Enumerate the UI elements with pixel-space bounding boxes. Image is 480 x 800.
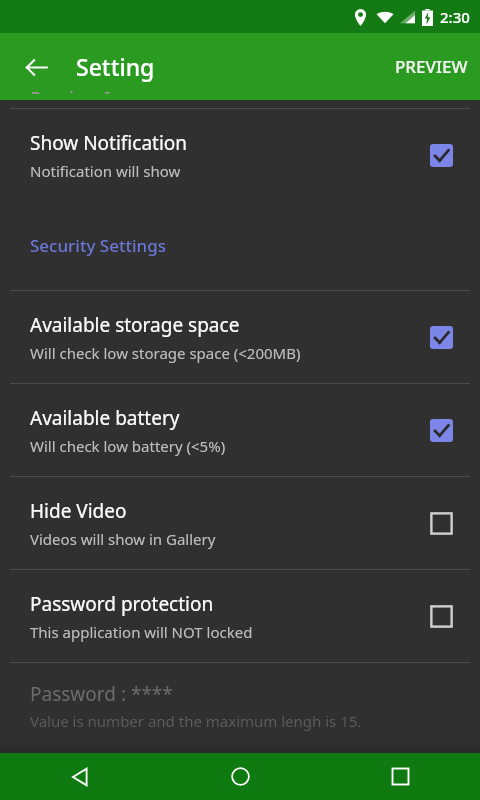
staticText: Will check low storage space (<200MB) bbox=[30, 343, 301, 363]
staticText: Password protection bbox=[30, 591, 214, 617]
staticText: Hide Video bbox=[30, 498, 127, 524]
button[interactable]: PREVIEW bbox=[383, 45, 480, 88]
staticText: 2:30 bbox=[440, 7, 470, 27]
staticText: Value is number and the maximum lengh is… bbox=[30, 711, 362, 731]
staticText: Available battery bbox=[30, 405, 180, 431]
staticText: Videos will show in Gallery bbox=[30, 529, 216, 549]
button[interactable]: Password : **** bbox=[0, 663, 480, 745]
staticText: Preview Icon bbox=[30, 86, 143, 94]
staticText: Security Settings bbox=[30, 234, 166, 257]
staticText: PREVIEW bbox=[395, 55, 468, 78]
button[interactable]: Available battery bbox=[0, 384, 480, 476]
button[interactable]: Show Notification bbox=[0, 109, 480, 201]
button[interactable]: Back bbox=[14, 45, 58, 89]
button[interactable]: Home bbox=[160, 753, 320, 800]
staticText: Available storage space bbox=[30, 312, 240, 338]
button[interactable]: Password protection bbox=[0, 570, 480, 662]
staticText: Show Notification bbox=[30, 130, 188, 156]
staticText: This application will NOT locked bbox=[30, 622, 253, 642]
staticText: Setting bbox=[76, 51, 155, 82]
button[interactable]: Available storage space bbox=[0, 291, 480, 383]
staticText: Password : **** bbox=[30, 681, 173, 707]
button[interactable]: Recent apps bbox=[320, 753, 480, 800]
button[interactable]: Back bbox=[0, 753, 160, 800]
staticText: Notification will show bbox=[30, 161, 181, 181]
button[interactable]: Hide Video bbox=[0, 477, 480, 569]
staticText: Will check low battery (<5%) bbox=[30, 436, 226, 456]
